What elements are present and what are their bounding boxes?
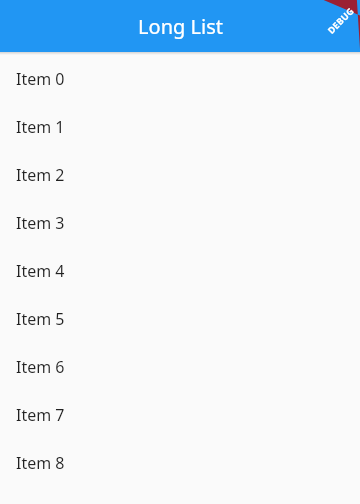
button[interactable]: Item 7: [0, 391, 360, 439]
staticText: Item 1: [16, 116, 65, 138]
button[interactable]: Item 3: [0, 199, 360, 247]
staticText: Item 6: [16, 356, 65, 378]
staticText: Item 3: [16, 212, 65, 234]
button[interactable]: Item 4: [0, 247, 360, 295]
staticText: Item 7: [16, 404, 65, 426]
button[interactable]: Item 6: [0, 343, 360, 391]
button[interactable]: Item 1: [0, 103, 360, 151]
staticText: Item 4: [16, 260, 65, 282]
button[interactable]: Item 5: [0, 295, 360, 343]
staticText: Item 0: [16, 68, 65, 90]
staticText: Item 5: [16, 308, 65, 330]
staticText: Item 8: [16, 452, 65, 474]
button[interactable]: Item 0: [0, 55, 360, 103]
staticText: DEBUG: [325, 4, 356, 36]
button[interactable]: Item 8: [0, 439, 360, 487]
button[interactable]: Item 2: [0, 151, 360, 199]
other: Debug banner: [308, 0, 360, 52]
staticText: Long List: [138, 13, 223, 40]
staticText: Item 2: [16, 164, 65, 186]
